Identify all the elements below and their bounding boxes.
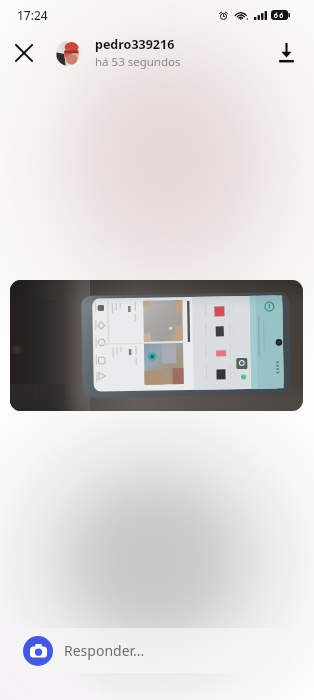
button[interactable]: Responder... [16,628,296,673]
button[interactable]: Download [270,37,302,69]
button[interactable]: Close [9,38,39,68]
staticText: há 53 segundos [95,54,181,70]
button[interactable]: pedro339216 [56,30,181,76]
staticText: Responder... [64,641,145,660]
staticText: pedro339216 [95,36,175,53]
staticText: 17:24 [17,7,48,23]
